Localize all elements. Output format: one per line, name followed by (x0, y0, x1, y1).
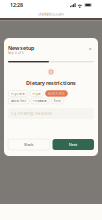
staticText: Pescatarian (33, 99, 47, 103)
staticText: 12:28 (10, 1, 23, 9)
button[interactable]: Next (52, 139, 94, 150)
staticText: New setup (8, 44, 34, 52)
button[interactable]: Keto (51, 98, 64, 104)
staticText: Step 4 of 6 (8, 51, 24, 55)
button[interactable]: Vegetarian (8, 90, 28, 96)
button[interactable]: Vegan (30, 90, 44, 96)
staticText: Gluten-Free (48, 92, 65, 95)
staticText: Keto (54, 99, 61, 103)
button[interactable]: Close (86, 45, 94, 53)
button[interactable]: Pescatarian (31, 98, 50, 104)
button[interactable]: Back (8, 139, 49, 150)
button[interactable]: Gluten-Free (45, 90, 68, 96)
staticText: Vegetarian (11, 92, 26, 95)
staticText: Dietary restrictions (26, 79, 76, 86)
staticText: Back (24, 142, 33, 147)
staticText: Vegan (32, 92, 41, 95)
button[interactable]: Lactose-free (8, 98, 29, 104)
staticText: Next (69, 142, 78, 147)
staticText: ✕ (88, 47, 91, 51)
staticText: Lactose-free (11, 99, 27, 103)
staticText: chefdelice.com (38, 11, 64, 17)
staticText: e.g. nut allergy, low sodium (11, 112, 51, 115)
